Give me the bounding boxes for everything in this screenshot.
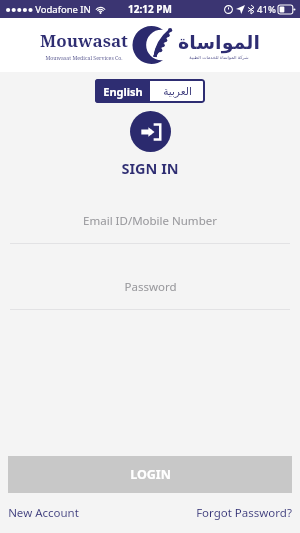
staticText: Vodafone IN <box>35 3 91 16</box>
button[interactable]: العربية <box>150 79 205 103</box>
button[interactable]: LOGIN <box>8 456 292 493</box>
staticText: Email ID/Mobile Number <box>83 213 217 229</box>
button[interactable]: English <box>95 79 150 103</box>
button[interactable]: Forgot Password? <box>196 505 292 521</box>
staticText: 41% <box>257 3 276 16</box>
button[interactable]: Email ID/Mobile Number <box>0 208 300 244</box>
staticText: المواساة <box>178 31 260 53</box>
staticText: شركة المواساة للخدمات الطبية <box>189 54 249 60</box>
staticText: Forgot Password? <box>196 505 292 521</box>
staticText: Mouwasat Medical Services Co. <box>45 54 123 61</box>
button[interactable]: Password <box>0 274 300 310</box>
staticText: 12:12 PM <box>128 2 172 16</box>
staticText: Password <box>124 279 177 295</box>
staticText: LOGIN <box>130 466 171 483</box>
staticText: Mouwasat <box>40 29 128 52</box>
staticText: العربية <box>163 85 192 97</box>
staticText: New Account <box>8 505 79 521</box>
button[interactable]: Sign in <box>130 111 171 152</box>
staticText: SIGN IN <box>121 158 179 178</box>
staticText: English <box>103 84 143 99</box>
button[interactable]: New Account <box>8 505 79 521</box>
